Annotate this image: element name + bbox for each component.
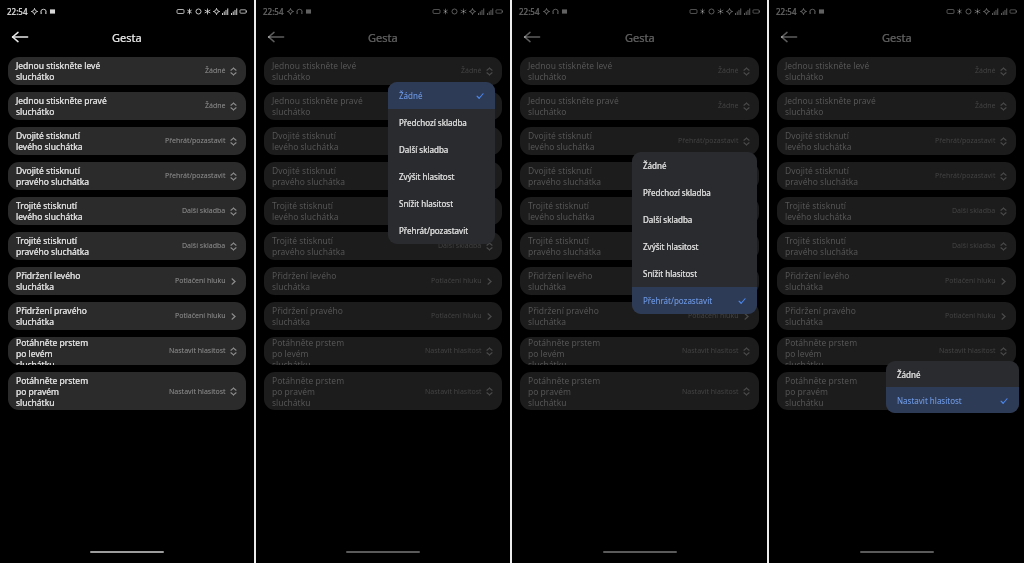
button[interactable]: Snížit hlasitost — [388, 190, 495, 217]
button[interactable]: Přidržení pravého sluchátka — [777, 302, 1016, 330]
button[interactable]: Trojité stisknutí levého sluchátka — [777, 197, 1016, 225]
button[interactable]: Přehrát/pozastavit — [388, 217, 495, 244]
button[interactable]: Potáhněte prstem po pravém sluchátku — [777, 372, 1016, 410]
button[interactable]: Žádné — [632, 152, 757, 179]
staticText: Přidržení pravého sluchátka — [785, 305, 865, 327]
staticText: Další skladba — [182, 206, 226, 216]
staticText: Přidržení levého sluchátka — [272, 270, 351, 292]
button[interactable]: Jednou stiskněte levé sluchátko — [520, 57, 759, 85]
staticText: Žádné — [399, 90, 423, 101]
staticText: Potáhněte prstem po pravém sluchátku — [528, 375, 605, 408]
button[interactable]: Nastavit hlasitost — [886, 387, 1019, 413]
staticText: Dvojité stisknutí pravého sluchátka — [528, 165, 603, 187]
button[interactable]: Back — [518, 23, 546, 51]
button[interactable]: Trojité stisknutí pravého sluchátka — [520, 232, 759, 260]
button[interactable]: Jednou stiskněte pravé sluchátko — [264, 92, 502, 120]
staticText: 22:54 — [7, 6, 28, 17]
button[interactable]: Zvýšit hlasitost — [388, 163, 495, 190]
staticText: Další skladba — [952, 206, 996, 216]
button[interactable]: Přidržení levého sluchátka — [264, 267, 502, 295]
staticText: 22:54 — [263, 6, 284, 17]
staticText: Přehrát/pozastavit — [935, 136, 996, 146]
button[interactable]: Potáhněte prstem po levém sluchátku — [777, 337, 1016, 365]
staticText: Potáhněte prstem po levém sluchátku — [16, 337, 92, 365]
staticText: Trojité stisknutí pravého sluchátka — [528, 235, 611, 257]
button[interactable]: Další skladba — [388, 136, 495, 163]
staticText: Zvýšit hlasitost — [643, 241, 699, 252]
staticText: Předchozí skladba — [643, 187, 711, 198]
button[interactable]: Potáhněte prstem po pravém sluchátku — [8, 372, 246, 410]
staticText: Nastavit hlasitost — [682, 346, 739, 356]
staticText: Potlačení hluku — [175, 311, 226, 321]
button[interactable]: Dvojité stisknutí levého sluchátka — [8, 127, 246, 155]
staticText: Potlačení hluku — [688, 311, 739, 321]
button[interactable]: Back — [262, 23, 290, 51]
button[interactable]: Potáhněte prstem po pravém sluchátku — [264, 372, 502, 410]
button[interactable]: Přidržení pravého sluchátka — [264, 302, 502, 330]
staticText: Dvojité stisknutí pravého sluchátka — [16, 165, 90, 187]
button[interactable]: Jednou stiskněte levé sluchátko — [777, 57, 1016, 85]
staticText: Předchozí skladba — [399, 117, 467, 128]
button[interactable]: Přidržení pravého sluchátka — [8, 302, 246, 330]
staticText: Gesta — [882, 30, 912, 45]
staticText: 22:54 — [519, 6, 540, 17]
staticText: Potlačení hluku — [175, 276, 226, 286]
staticText: Gesta — [112, 30, 142, 45]
button[interactable]: Trojité stisknutí pravého sluchátka — [777, 232, 1016, 260]
button[interactable]: Trojité stisknutí pravého sluchátka — [264, 232, 502, 260]
staticText: Jednou stiskněte levé sluchátko — [785, 60, 880, 82]
button[interactable]: Potáhněte prstem po levém sluchátku — [8, 337, 246, 365]
staticText: Potáhněte prstem po levém sluchátku — [528, 337, 605, 365]
button[interactable]: Žádné — [886, 361, 1019, 387]
staticText: Nastavit hlasitost — [939, 346, 996, 356]
staticText: Další skladba — [952, 241, 996, 251]
button[interactable]: Trojité stisknutí levého sluchátka — [264, 197, 502, 225]
button[interactable]: Přidržení levého sluchátka — [8, 267, 246, 295]
staticText: Nastavit hlasitost — [169, 387, 226, 397]
staticText: Žádné — [897, 369, 921, 380]
button[interactable]: Jednou stiskněte pravé sluchátko — [777, 92, 1016, 120]
button[interactable]: Dvojité stisknutí levého sluchátka — [777, 127, 1016, 155]
button[interactable]: Předchozí skladba — [388, 109, 495, 136]
button[interactable]: Jednou stiskněte pravé sluchátko — [520, 92, 759, 120]
staticText: Potlačení hluku — [688, 276, 739, 286]
button[interactable]: Další skladba — [632, 206, 757, 233]
button[interactable]: Trojité stisknutí levého sluchátka — [520, 197, 759, 225]
button[interactable]: Předchozí skladba — [632, 179, 757, 206]
button[interactable]: Přidržení levého sluchátka — [520, 267, 759, 295]
staticText: Dvojité stisknutí pravého sluchátka — [785, 165, 860, 187]
button[interactable]: Dvojité stisknutí pravého sluchátka — [264, 162, 502, 190]
button[interactable]: Dvojité stisknutí pravého sluchátka — [520, 162, 759, 190]
button[interactable]: Dvojité stisknutí pravého sluchátka — [8, 162, 246, 190]
button[interactable]: Dvojité stisknutí levého sluchátka — [264, 127, 502, 155]
button[interactable]: Potáhněte prstem po levém sluchátku — [520, 337, 759, 365]
button[interactable]: Jednou stiskněte pravé sluchátko — [8, 92, 246, 120]
button[interactable]: Zvýšit hlasitost — [632, 233, 757, 260]
button[interactable]: Jednou stiskněte levé sluchátko — [264, 57, 502, 85]
button[interactable]: Snížit hlasitost — [632, 260, 757, 287]
button[interactable]: Přehrát/pozastavit — [632, 287, 757, 314]
staticText: Další skladba — [399, 144, 449, 155]
staticText: Přehrát/pozastavit — [643, 295, 713, 306]
staticText: Potáhněte prstem po levém sluchátku — [272, 337, 348, 365]
button[interactable]: Dvojité stisknutí levého sluchátka — [520, 127, 759, 155]
button[interactable]: Dvojité stisknutí pravého sluchátka — [777, 162, 1016, 190]
button[interactable]: Back — [775, 23, 803, 51]
staticText: Přidržení levého sluchátka — [16, 270, 95, 292]
button[interactable]: Trojité stisknutí levého sluchátka — [8, 197, 246, 225]
staticText: Potáhněte prstem po pravém sluchátku — [272, 375, 348, 408]
button[interactable]: Žádné — [388, 82, 495, 109]
button[interactable]: Potáhněte prstem po levém sluchátku — [264, 337, 502, 365]
staticText: Nastavit hlasitost — [897, 395, 962, 406]
button[interactable]: Trojité stisknutí pravého sluchátka — [8, 232, 246, 260]
button[interactable]: Přidržení pravého sluchátka — [520, 302, 759, 330]
staticText: Nastavit hlasitost — [682, 387, 739, 397]
button[interactable]: Jednou stiskněte levé sluchátko — [8, 57, 246, 85]
button[interactable]: Přidržení levého sluchátka — [777, 267, 1016, 295]
button[interactable]: Back — [6, 23, 34, 51]
staticText: Jednou stiskněte levé sluchátko — [16, 60, 110, 82]
button[interactable]: Potáhněte prstem po pravém sluchátku — [520, 372, 759, 410]
staticText: Další skladba — [438, 241, 482, 251]
